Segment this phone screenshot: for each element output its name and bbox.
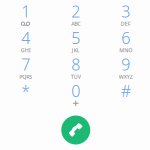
staticText: # [121,80,131,101]
button[interactable]: # [101,81,150,108]
staticText: 4 [21,27,30,48]
staticText: 5 [71,27,80,48]
staticText: TUV [71,73,81,80]
staticText: 9 [121,54,130,75]
staticText: PQRS [19,73,32,80]
staticText: 3 [121,1,130,22]
button[interactable]: 8 [51,55,101,81]
staticText: 6 [121,27,130,48]
button[interactable]: 3 [101,2,150,28]
staticText: GHI [21,47,31,54]
button[interactable]: 4 [1,28,51,55]
staticText: JKL [72,47,80,54]
staticText: 2 [71,1,80,22]
staticText: MNO [119,47,132,54]
button[interactable]: 9 [101,55,150,81]
staticText: 7 [21,54,30,75]
button[interactable]: 6 [101,28,150,55]
staticText: DEF [121,20,131,27]
staticText: ABC [71,20,80,27]
staticText: 0 [71,80,80,101]
button[interactable]: 7 [1,55,51,81]
staticText: WXYZ [119,73,133,80]
button[interactable]: 1 [1,2,51,28]
staticText: 1 [21,1,30,22]
button[interactable]: 0 [51,81,101,108]
button[interactable]: * [1,81,51,108]
staticText: 8 [71,54,80,75]
button[interactable]: Call [61,115,91,145]
staticText: * [21,80,30,101]
button[interactable]: 2 [51,2,101,28]
button[interactable]: 5 [51,28,101,55]
